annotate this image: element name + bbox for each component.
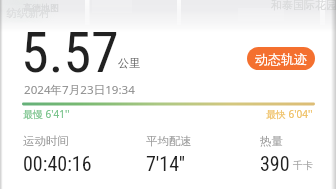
staticText: 2024年7月23日19:34 xyxy=(24,82,135,98)
staticText: 最慢 6'41'' xyxy=(23,107,70,121)
staticText: 高德地图 xyxy=(23,2,59,13)
staticText: 运动时间 xyxy=(23,134,69,148)
staticText: 390 xyxy=(260,152,290,175)
button[interactable]: 动态轨迹 xyxy=(247,47,315,70)
staticText: 最快 6'04'' xyxy=(266,107,313,121)
staticText: 热量 xyxy=(260,134,283,148)
staticText: 5.57 xyxy=(21,20,119,86)
staticText: 和泰国际花园 xyxy=(271,0,336,12)
staticText: 00:40:16 xyxy=(23,152,92,175)
staticText: 平均配速 xyxy=(146,134,192,148)
staticText: 千卡 xyxy=(293,159,313,172)
staticText: 纺织新村 xyxy=(6,6,50,20)
staticText: 7'14'' xyxy=(146,152,186,175)
staticText: 公里 xyxy=(118,56,140,70)
staticText: 动态轨迹 xyxy=(255,51,307,67)
